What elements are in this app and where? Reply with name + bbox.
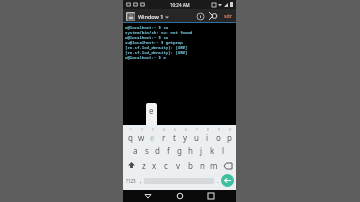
button[interactable]: v — [172, 158, 184, 173]
staticText: u@localhost:~ $ su — [125, 25, 169, 30]
staticText: 9 — [218, 128, 220, 132]
staticText: su@localhost:~ $ getprop — [125, 40, 183, 45]
button[interactable]: n — [196, 158, 208, 173]
staticText: [ro.sf.lcd_density]: [480] — [125, 50, 188, 55]
staticText: k — [210, 145, 215, 156]
button[interactable]: a — [130, 143, 141, 158]
staticText: m — [210, 160, 218, 171]
staticText: c — [164, 160, 168, 171]
staticText: Window 1 — [138, 13, 164, 20]
button[interactable]: Windows — [126, 12, 135, 21]
button[interactable]: f — [163, 143, 174, 158]
staticText: 10:24 AM — [170, 2, 190, 8]
button[interactable]: Backspace — [220, 158, 235, 173]
button[interactable]: Info — [196, 12, 204, 20]
staticText: 6 — [185, 128, 187, 132]
button[interactable]: 0 — [224, 127, 235, 143]
button[interactable]: Recents — [205, 190, 217, 202]
staticText: 3 — [152, 128, 154, 132]
staticText: , — [140, 177, 142, 185]
button[interactable]: x — [149, 158, 160, 173]
button[interactable]: l — [218, 143, 229, 158]
staticText: w — [138, 132, 145, 143]
staticText: n — [200, 160, 205, 171]
staticText: x — [152, 160, 157, 171]
button[interactable]: b — [184, 158, 196, 173]
button[interactable]: 6 — [180, 127, 191, 143]
staticText: sdr — [224, 13, 232, 20]
staticText: e — [149, 105, 154, 116]
staticText: t — [173, 132, 176, 143]
button[interactable]: Comma — [137, 173, 144, 188]
staticText: p — [227, 132, 232, 143]
staticText: ?123 — [126, 178, 136, 184]
button[interactable]: Period — [214, 173, 221, 188]
staticText: d — [155, 145, 160, 156]
staticText: h — [188, 145, 193, 156]
staticText: 4 — [163, 128, 165, 132]
button[interactable]: Home — [174, 190, 186, 202]
staticText: 2 — [141, 128, 143, 132]
staticText: r — [162, 132, 166, 143]
button[interactable]: s — [141, 143, 152, 158]
button[interactable]: Shift — [124, 158, 138, 173]
staticText: 7 — [196, 128, 198, 132]
button[interactable]: j — [196, 143, 207, 158]
button[interactable]: 2 — [136, 127, 147, 143]
button[interactable]: 1 — [124, 127, 136, 143]
staticText: u@localhost:~ $ e — [125, 55, 166, 60]
staticText: u@localhost:~ $ su — [125, 35, 169, 40]
staticText: u — [194, 132, 199, 143]
staticText: b — [188, 160, 193, 171]
staticText: j — [200, 145, 203, 156]
button[interactable]: d — [152, 143, 163, 158]
staticText: y — [183, 132, 188, 143]
button[interactable]: SDR — [222, 12, 233, 20]
button[interactable]: ?123 — [125, 173, 137, 188]
button[interactable]: m — [208, 158, 220, 173]
staticText: f — [167, 145, 170, 156]
button[interactable]: h — [185, 143, 196, 158]
button[interactable]: 3 — [147, 127, 158, 143]
button[interactable]: z — [138, 158, 149, 173]
staticText: e — [150, 132, 155, 143]
staticText: z — [142, 160, 146, 171]
staticText: 0 — [229, 128, 231, 132]
staticText: s — [145, 145, 149, 156]
staticText: a — [133, 145, 138, 156]
button[interactable]: k — [207, 143, 218, 158]
button[interactable]: 7 — [191, 127, 202, 143]
button[interactable]: Back — [142, 190, 154, 202]
button[interactable]: 9 — [213, 127, 224, 143]
button[interactable]: c — [160, 158, 172, 173]
button[interactable]: Close — [208, 11, 218, 21]
button[interactable]: Enter — [221, 174, 234, 187]
staticText: . — [217, 177, 219, 185]
staticText: o — [216, 132, 221, 143]
staticText: g — [177, 145, 182, 156]
staticText: system/bin/sh: su: not found — [125, 30, 193, 35]
button[interactable]: 8 — [202, 127, 213, 143]
button[interactable]: Windows — [123, 9, 236, 23]
staticText: [ro.sf.lcd_density]: [480] — [125, 45, 188, 50]
staticText: i — [206, 132, 209, 143]
button[interactable]: g — [174, 143, 185, 158]
staticText: q — [128, 132, 133, 143]
staticText: 5 — [174, 128, 176, 132]
staticText: 8 — [207, 128, 209, 132]
staticText: v — [176, 160, 181, 171]
staticText: 1 — [130, 128, 132, 132]
button[interactable]: 5 — [169, 127, 180, 143]
button[interactable]: 4 — [158, 127, 169, 143]
staticText: l — [222, 145, 225, 156]
